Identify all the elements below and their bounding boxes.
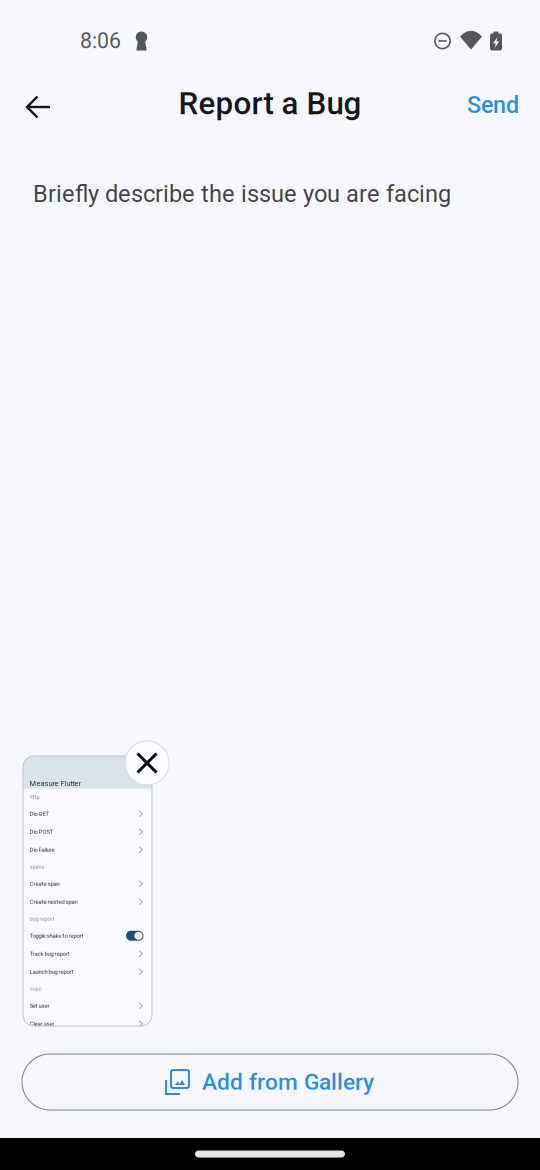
staticText: Create span bbox=[29, 880, 59, 887]
staticText: Briefly describe the issue you are facin… bbox=[33, 180, 451, 208]
staticText: Send bbox=[467, 91, 519, 119]
button[interactable]: Add from Gallery bbox=[0, 1026, 540, 1138]
staticText: Clear user bbox=[29, 1020, 54, 1027]
staticText: Launch bug report bbox=[29, 968, 73, 975]
staticText: Track bug report bbox=[29, 950, 69, 957]
staticText: Report a Bug bbox=[178, 85, 361, 122]
staticText: Dio Failure bbox=[29, 846, 54, 853]
staticText: misc bbox=[29, 985, 41, 992]
staticText: Dio POST bbox=[29, 828, 53, 835]
button[interactable]: Back bbox=[13, 80, 64, 129]
staticText: bug report bbox=[29, 915, 54, 922]
staticText: Measure Flutter bbox=[29, 779, 81, 788]
button[interactable]: Dio GET bbox=[23, 805, 152, 823]
button[interactable]: Dio Failure bbox=[23, 841, 152, 859]
staticText: Toggle shake to report bbox=[29, 932, 83, 939]
button[interactable]: Set user bbox=[23, 997, 152, 1015]
button[interactable]: Create span bbox=[23, 875, 152, 893]
staticText: Set user bbox=[29, 1002, 49, 1009]
button[interactable]: Send bbox=[459, 79, 527, 131]
staticText: Add from Gallery bbox=[202, 1069, 374, 1095]
button[interactable]: Dio POST bbox=[23, 823, 152, 841]
button[interactable]: Track bug report bbox=[23, 945, 152, 963]
button[interactable]: Remove attachment bbox=[125, 741, 169, 785]
staticText: 8:06 bbox=[80, 28, 121, 53]
staticText: http bbox=[29, 793, 39, 800]
staticText: spans bbox=[29, 863, 44, 870]
button[interactable]: Launch bug report bbox=[23, 963, 152, 981]
staticText: Create nested span bbox=[29, 898, 77, 905]
button[interactable]: Create nested span bbox=[23, 893, 152, 911]
button[interactable]: Clear user bbox=[23, 1015, 152, 1033]
staticText: Dio GET bbox=[29, 810, 49, 817]
